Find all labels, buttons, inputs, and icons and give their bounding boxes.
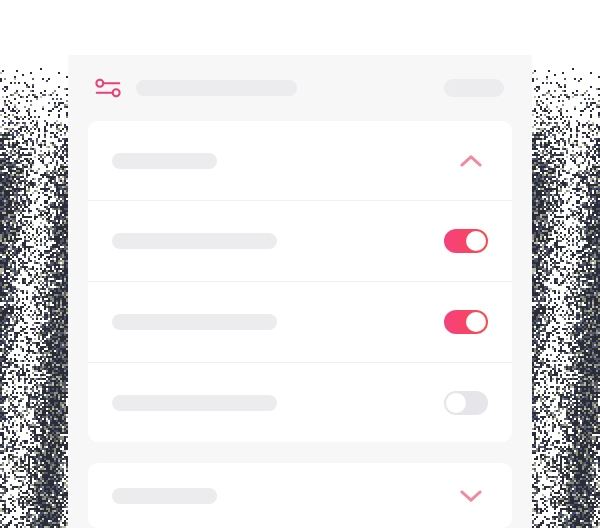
button[interactable]: Collapse section [88, 121, 512, 200]
button[interactable]: Toggle off [444, 391, 488, 415]
button[interactable]: Filters [96, 76, 120, 100]
button[interactable]: Toggle off [88, 363, 512, 442]
button[interactable]: Toggle on [88, 201, 512, 281]
button[interactable]: Toggle on [444, 229, 488, 253]
button[interactable]: Collapse section [454, 144, 488, 178]
button[interactable]: Toggle on [88, 282, 512, 362]
button[interactable]: Expand section [454, 479, 488, 513]
button[interactable]: Toggle on [444, 310, 488, 334]
button[interactable]: Expand section [88, 463, 512, 528]
